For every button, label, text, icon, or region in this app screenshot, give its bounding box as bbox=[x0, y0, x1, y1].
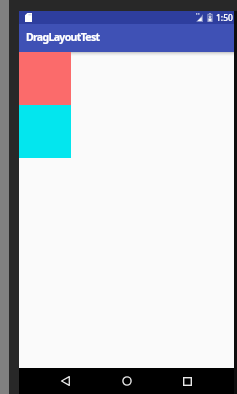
button[interactable]: Recent apps bbox=[175, 368, 199, 394]
button[interactable]: Back bbox=[47, 368, 83, 394]
staticText: DragLayoutTest bbox=[26, 30, 100, 44]
staticText: 1:50 bbox=[216, 12, 233, 24]
button[interactable]: Home bbox=[115, 368, 139, 394]
